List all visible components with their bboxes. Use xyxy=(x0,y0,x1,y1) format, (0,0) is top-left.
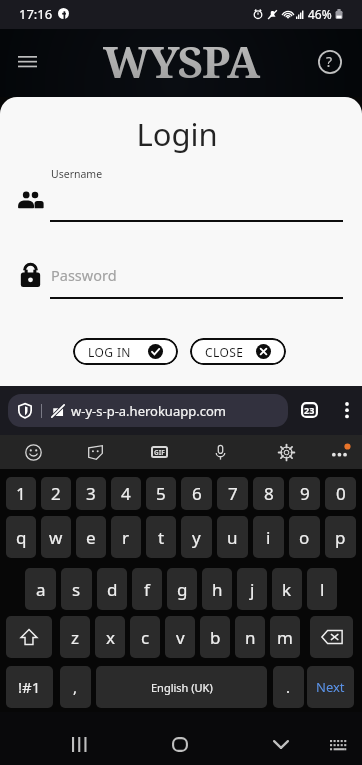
staticText: 46% xyxy=(308,6,332,22)
staticText: 8 xyxy=(264,482,274,505)
button[interactable]: e xyxy=(76,516,106,558)
staticText: Username xyxy=(51,167,103,181)
staticText: 5 xyxy=(156,482,166,505)
staticText: k xyxy=(282,578,292,601)
staticText: u xyxy=(227,526,238,549)
staticText: WYSPA xyxy=(103,31,260,91)
button[interactable]: !#1 xyxy=(6,666,53,708)
button[interactable]: d xyxy=(97,568,127,610)
staticText: w-y-s-p-a.herokuapp.com xyxy=(71,402,226,420)
staticText: 6 xyxy=(192,482,202,505)
button[interactable]: y xyxy=(181,516,212,558)
button[interactable]: w-y-s-p-a.herokuapp.com xyxy=(8,394,288,427)
button[interactable]: 3 xyxy=(76,477,106,510)
staticText: l xyxy=(320,578,325,601)
button[interactable]: p xyxy=(325,516,356,558)
staticText: ? xyxy=(326,52,333,71)
button[interactable]: Menu xyxy=(10,45,44,79)
staticText: p xyxy=(335,526,346,549)
staticText: LOG IN xyxy=(88,344,131,360)
button[interactable]: 1 xyxy=(6,477,36,510)
staticText: 17:16 xyxy=(19,5,53,23)
button[interactable]: k xyxy=(272,568,302,610)
button[interactable]: , xyxy=(60,666,91,708)
button[interactable]: c xyxy=(130,616,160,658)
button[interactable]: g xyxy=(167,568,197,610)
staticText: Login xyxy=(0,113,358,155)
button[interactable]: Settings xyxy=(270,436,302,468)
button[interactable]: CLOSE xyxy=(190,338,286,365)
button[interactable]: Backspace xyxy=(310,616,353,658)
button[interactable]: t xyxy=(146,516,176,558)
button[interactable]: Hide keyboard xyxy=(259,722,303,765)
button[interactable]: GIF xyxy=(143,436,175,468)
button[interactable]: . xyxy=(273,666,304,708)
button[interactable]: i xyxy=(253,516,284,558)
button[interactable]: LOG IN xyxy=(73,338,178,365)
staticText: a xyxy=(36,578,46,601)
staticText: 4 xyxy=(121,482,131,505)
staticText: j xyxy=(250,578,255,601)
button[interactable]: q xyxy=(6,516,36,558)
button[interactable]: n xyxy=(235,616,265,658)
staticText: CLOSE xyxy=(205,344,244,360)
button[interactable]: 2 xyxy=(41,477,71,510)
button[interactable]: Switch keyboard xyxy=(316,723,360,765)
staticText: b xyxy=(210,626,221,649)
button[interactable]: 9 xyxy=(289,477,320,510)
button[interactable]: 4 xyxy=(111,477,141,510)
staticText: g xyxy=(177,578,188,601)
button[interactable]: z xyxy=(60,616,90,658)
button[interactable]: More options xyxy=(337,398,356,422)
button[interactable]: 0 xyxy=(325,477,356,510)
button[interactable]: Next xyxy=(307,666,354,708)
staticText: q xyxy=(16,526,27,549)
staticText: t xyxy=(158,526,165,549)
button[interactable]: x xyxy=(95,616,125,658)
staticText: f xyxy=(144,578,150,601)
button[interactable]: a xyxy=(25,568,56,610)
button[interactable]: 6 xyxy=(181,477,212,510)
staticText: r xyxy=(122,526,130,549)
staticText: 0 xyxy=(336,482,346,505)
button[interactable]: Stickers xyxy=(79,436,111,468)
button[interactable]: u xyxy=(217,516,248,558)
staticText: GIF xyxy=(154,448,165,457)
staticText: !#1 xyxy=(18,677,41,697)
staticText: n xyxy=(245,626,256,649)
button[interactable]: m xyxy=(270,616,300,658)
button[interactable]: Emoji xyxy=(17,436,49,468)
button[interactable]: 8 xyxy=(253,477,284,510)
staticText: y xyxy=(192,526,201,549)
staticText: d xyxy=(107,578,118,601)
button[interactable]: 7 xyxy=(217,477,248,510)
staticText: v xyxy=(176,626,185,649)
button[interactable]: b xyxy=(200,616,230,658)
button[interactable]: w xyxy=(41,516,71,558)
staticText: m xyxy=(277,626,293,649)
button[interactable]: Tabs xyxy=(301,402,318,418)
button[interactable]: English (UK) xyxy=(96,666,267,708)
staticText: w xyxy=(49,526,63,549)
button[interactable]: More xyxy=(324,436,356,468)
staticText: c xyxy=(141,626,150,649)
button[interactable]: v xyxy=(165,616,195,658)
staticText: e xyxy=(86,526,96,549)
staticText: , xyxy=(73,677,78,697)
button[interactable]: h xyxy=(202,568,232,610)
staticText: 3 xyxy=(86,482,96,505)
button[interactable]: Shift xyxy=(6,616,52,658)
button[interactable]: 5 xyxy=(146,477,176,510)
button[interactable]: j xyxy=(237,568,267,610)
button[interactable]: Help xyxy=(313,45,346,78)
button[interactable]: Recents xyxy=(57,722,101,765)
button[interactable]: f xyxy=(132,568,162,610)
staticText: 2 xyxy=(51,482,61,505)
button[interactable]: r xyxy=(111,516,141,558)
staticText: Next xyxy=(316,678,345,696)
button[interactable]: Home xyxy=(158,722,202,765)
button[interactable]: l xyxy=(307,568,337,610)
button[interactable]: s xyxy=(61,568,92,610)
button[interactable]: o xyxy=(289,516,320,558)
button[interactable]: Voice input xyxy=(204,436,236,468)
